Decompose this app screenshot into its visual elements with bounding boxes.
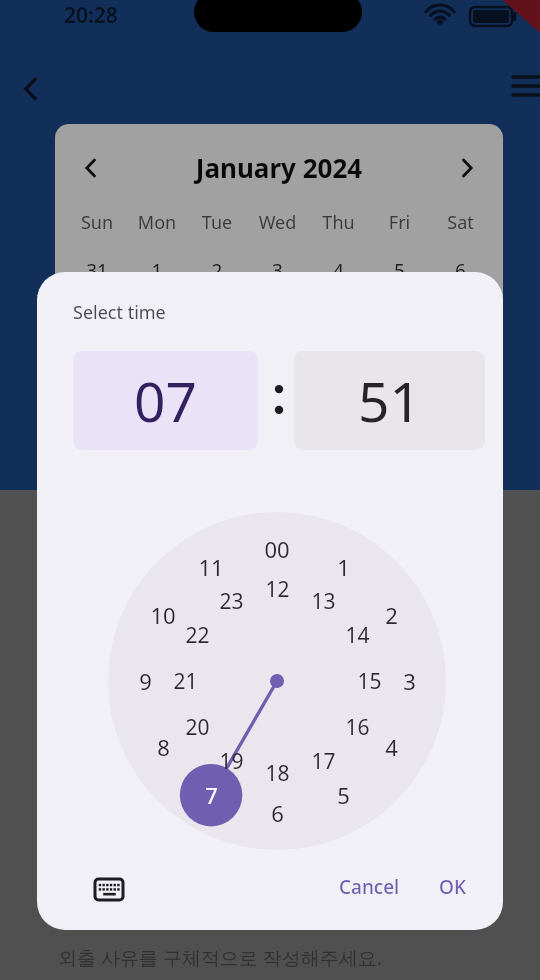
- staticText: Sun: [67, 210, 127, 235]
- staticText: 4: [385, 732, 398, 762]
- staticText: Cancel: [339, 874, 400, 900]
- staticText: 1: [127, 258, 187, 284]
- staticText: 외출 사유를 구체적으로 작성해주세요.: [58, 945, 382, 971]
- staticText: 2: [385, 600, 398, 630]
- staticText: 20: [185, 713, 210, 742]
- staticText: 19: [219, 747, 244, 776]
- staticText: 2: [187, 258, 247, 284]
- staticText: Mon: [127, 210, 187, 235]
- button[interactable]: 00: [108, 512, 446, 850]
- staticText: 21: [173, 667, 198, 696]
- staticText: January 2024: [99, 150, 459, 185]
- staticText: 17: [311, 747, 336, 776]
- staticText: Tue: [187, 210, 247, 235]
- staticText: 6: [271, 798, 284, 828]
- staticText: 4: [308, 258, 369, 284]
- staticText: 3: [403, 666, 416, 696]
- button[interactable]: Switch to text input: [87, 870, 131, 908]
- button[interactable]: Menu: [506, 66, 540, 106]
- staticText: 31: [67, 258, 127, 284]
- button[interactable]: 51: [294, 351, 485, 450]
- staticText: 8: [157, 732, 170, 762]
- staticText: 7: [205, 780, 218, 810]
- staticText: Fri: [369, 210, 430, 235]
- staticText: Wed: [247, 210, 308, 235]
- staticText: Sat: [430, 210, 491, 235]
- staticText: 00: [264, 534, 290, 564]
- staticText: 14: [345, 621, 370, 650]
- staticText: 15: [357, 667, 382, 696]
- button[interactable]: OK: [425, 866, 480, 908]
- staticText: 5: [369, 258, 430, 284]
- staticText: 20:28: [64, 1, 118, 30]
- button[interactable]: Cancel: [325, 866, 414, 908]
- staticText: 13: [311, 587, 336, 616]
- staticText: 12: [265, 575, 290, 604]
- staticText: Select time: [73, 300, 166, 325]
- button[interactable]: Back: [8, 66, 54, 112]
- staticText: 10: [150, 600, 176, 630]
- staticText: OK: [439, 874, 466, 900]
- staticText: 1: [337, 552, 350, 582]
- staticText: 11: [198, 552, 224, 582]
- staticText: 51: [358, 363, 421, 438]
- staticText: 9: [139, 666, 152, 696]
- staticText: 3: [247, 258, 308, 284]
- staticText: 6: [430, 258, 491, 284]
- staticText: Thu: [308, 210, 369, 235]
- staticText: 23: [219, 587, 244, 616]
- button[interactable]: 07: [73, 351, 258, 450]
- staticText: 5: [337, 780, 350, 810]
- staticText: 16: [345, 713, 370, 742]
- staticText: 07: [134, 363, 197, 438]
- staticText: 18: [265, 759, 290, 788]
- staticText: 22: [185, 621, 210, 650]
